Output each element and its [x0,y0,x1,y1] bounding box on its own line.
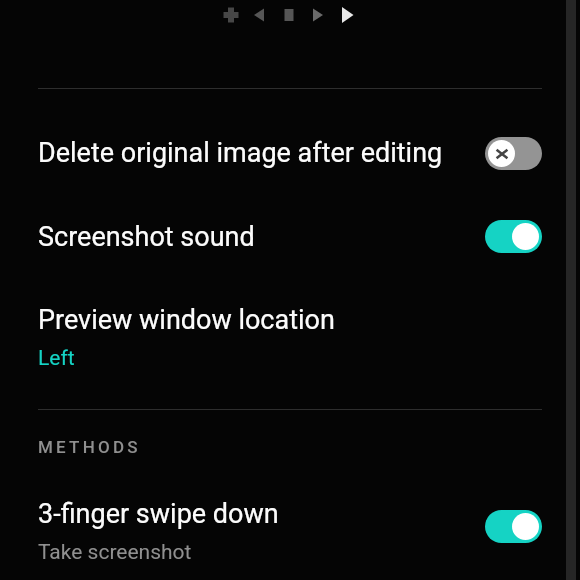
staticText: Preview window location [38,304,335,336]
button[interactable]: Delete original image after editing [485,137,542,170]
button[interactable]: 3-finger swipe down [485,510,542,543]
staticText: Take screenshot [38,540,192,565]
button[interactable]: Delete original image after editing [0,111,580,195]
staticText: Screenshot sound [38,221,255,253]
button[interactable]: Preview window location [0,278,580,397]
button[interactable]: Screenshot sound [485,220,542,253]
button[interactable]: Screenshot sound [0,195,580,278]
staticText: METHODS [38,437,141,457]
staticText: Delete original image after editing [38,137,443,169]
staticText: Left [38,346,75,371]
staticText: 3-finger swipe down [38,498,279,530]
button[interactable]: 3-finger swipe down [0,493,580,569]
button[interactable]: Screen recorder controls [0,0,580,32]
